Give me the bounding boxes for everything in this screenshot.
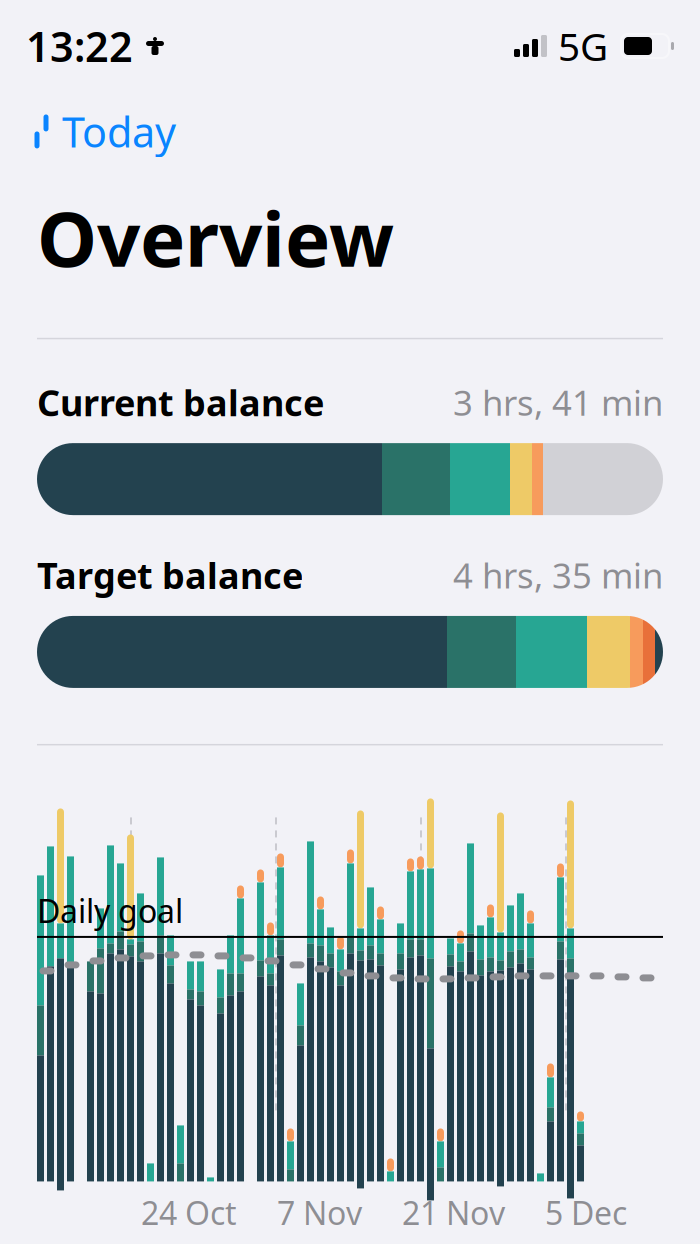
staticText: Daily goal [37,889,183,932]
staticText: 21 Nov [402,1191,505,1234]
staticText: Target balance [37,551,303,599]
staticText: Overview [37,187,394,288]
staticText: 13:22 [26,19,133,73]
staticText: 7 Nov [277,1191,362,1234]
staticText: 4 hrs, 35 min [453,552,663,598]
staticText: Today [62,104,176,159]
staticText: 5G [558,20,608,72]
staticText: 3 hrs, 41 min [453,379,663,425]
button[interactable]: Today [24,98,182,165]
staticText: 5 Dec [545,1191,627,1234]
staticText: Current balance [37,378,324,426]
staticText: 24 Oct [141,1191,237,1234]
